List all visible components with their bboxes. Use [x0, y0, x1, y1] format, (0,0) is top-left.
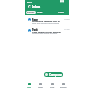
button[interactable]: Promo	[58, 11, 64, 14]
staticText: Rooms	[60, 86, 67, 89]
staticText: New tweets from people	[32, 30, 61, 33]
button[interactable]: Compose	[44, 72, 63, 77]
staticText: Someone tagged you in	[32, 19, 60, 22]
button[interactable]: Primary	[26, 11, 36, 14]
staticText: Primary	[27, 11, 35, 14]
staticText: 11:05	[64, 28, 70, 31]
staticText: Compose	[49, 73, 62, 77]
staticText: f	[29, 18, 30, 21]
staticText: Check out what is new	[32, 31, 58, 34]
staticText: Promo	[58, 11, 64, 14]
button[interactable]	[25, 27, 69, 37]
staticText: Inbox	[32, 5, 41, 9]
staticText: See the photo and more	[32, 21, 60, 24]
button[interactable]: Mail	[24, 83, 34, 89]
staticText: Twit	[32, 28, 38, 32]
staticText: 9:41	[27, 0, 32, 3]
staticText: Social	[37, 11, 43, 14]
button[interactable]	[25, 17, 69, 27]
staticText: New tweets from people	[32, 30, 61, 33]
staticText: New tweets from people	[32, 30, 61, 33]
button[interactable]: Meet	[35, 83, 45, 89]
staticText: Check out what is new	[32, 31, 58, 34]
button[interactable]: Chat	[47, 83, 57, 89]
staticText: Chat	[50, 86, 55, 89]
staticText: Mail	[27, 86, 31, 89]
staticText: Someone tagged you in	[32, 19, 60, 22]
staticText: Chat	[50, 86, 55, 89]
staticText: Promo	[58, 11, 64, 14]
staticText: Someone tagged you in	[32, 19, 60, 22]
staticText: Meet	[38, 86, 43, 89]
staticText: Face	[32, 18, 38, 22]
button[interactable]: Social	[37, 11, 43, 14]
staticText: 12:30	[64, 18, 70, 21]
staticText: 9:41	[27, 0, 32, 3]
staticText: Face	[32, 18, 38, 22]
staticText: Social	[37, 11, 43, 14]
staticText: f	[29, 29, 30, 32]
staticText: Compose	[49, 73, 62, 77]
staticText: Twit	[32, 28, 38, 32]
button[interactable]: Rooms	[58, 83, 68, 89]
button[interactable]: Account	[28, 5, 31, 8]
staticText: Twit	[32, 28, 38, 32]
staticText: Meet	[38, 86, 43, 89]
staticText: ▮▮▮	[60, 0, 64, 3]
staticText: Mail	[27, 86, 31, 89]
staticText: Primary	[27, 11, 35, 14]
staticText: ▮▮▮	[60, 0, 64, 3]
staticText: Face	[32, 18, 38, 22]
staticText: Rooms	[60, 86, 67, 89]
staticText: Inbox	[32, 5, 41, 9]
staticText: See the photo and more	[32, 21, 60, 24]
